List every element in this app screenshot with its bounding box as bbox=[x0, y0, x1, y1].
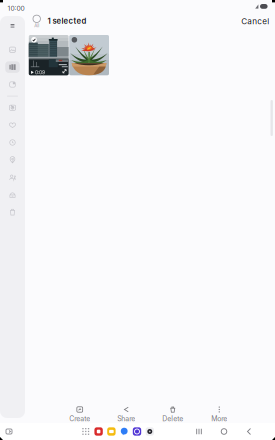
button[interactable]: Favourites bbox=[0, 116, 25, 134]
button[interactable]: Archive bbox=[0, 186, 25, 203]
button[interactable]: Videos bbox=[0, 99, 25, 116]
button[interactable]: App bbox=[94, 426, 104, 436]
button[interactable]: Messages bbox=[119, 426, 129, 436]
button[interactable]: People bbox=[0, 169, 25, 186]
button[interactable]: Menu bbox=[0, 17, 25, 35]
button[interactable]: Cancel bbox=[239, 14, 272, 28]
button[interactable]: Trash bbox=[0, 203, 25, 221]
staticText: Share bbox=[117, 415, 135, 423]
button[interactable]: App bbox=[3, 425, 15, 437]
button[interactable]: All bbox=[29, 14, 44, 29]
button[interactable]: Files bbox=[106, 426, 116, 436]
staticText: All bbox=[34, 23, 39, 28]
button[interactable]: Share bbox=[104, 405, 148, 423]
button[interactable]: App bbox=[132, 426, 142, 436]
staticText: Delete bbox=[162, 415, 183, 423]
button[interactable]: Albums bbox=[0, 76, 25, 93]
staticText: 10:00 bbox=[7, 4, 24, 12]
button[interactable] bbox=[69, 35, 109, 75]
staticText: Cancel bbox=[241, 16, 269, 26]
button[interactable]: All apps bbox=[81, 426, 91, 436]
button[interactable]: Photos bbox=[0, 41, 25, 58]
staticText: 1 selected bbox=[48, 16, 87, 26]
button[interactable]: Places bbox=[0, 151, 25, 169]
button[interactable]: Create bbox=[57, 405, 102, 423]
button[interactable]: Home bbox=[218, 426, 230, 436]
staticText: 0:09 bbox=[35, 69, 45, 75]
button[interactable]: Collections bbox=[0, 58, 25, 76]
button[interactable]: Camera bbox=[145, 426, 155, 436]
staticText: Create bbox=[69, 415, 90, 423]
button[interactable]: Recent apps bbox=[193, 426, 205, 436]
button[interactable]: 0:09 bbox=[29, 35, 69, 75]
button[interactable]: Back bbox=[243, 426, 255, 436]
button[interactable]: More bbox=[197, 405, 241, 423]
button[interactable]: Delete bbox=[150, 405, 195, 423]
staticText: More bbox=[211, 415, 227, 423]
button[interactable]: Recent bbox=[0, 134, 25, 151]
